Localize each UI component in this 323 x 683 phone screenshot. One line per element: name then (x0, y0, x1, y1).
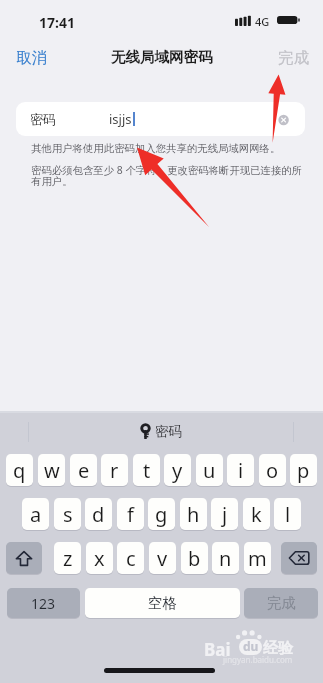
button[interactable]: e (70, 454, 97, 486)
staticText: w (44, 457, 60, 484)
staticText: f (127, 501, 134, 528)
button[interactable]: 密码 (133, 421, 190, 442)
staticText: o (266, 457, 279, 484)
button[interactable]: 空格 (85, 588, 240, 618)
staticText: i (238, 457, 244, 484)
button[interactable]: i (227, 454, 254, 486)
staticText: 17:41 (39, 13, 75, 32)
staticText: 4G (255, 14, 270, 29)
staticText: 空格 (148, 594, 177, 612)
staticText: n (219, 545, 232, 572)
staticText: 123 (31, 594, 56, 613)
button[interactable]: Backspace (281, 542, 317, 574)
button[interactable]: b (181, 542, 208, 574)
button[interactable]: 完成 (244, 588, 318, 618)
staticText: a (30, 501, 42, 528)
staticText: e (78, 457, 90, 484)
button[interactable]: k (243, 498, 270, 530)
staticText: h (187, 501, 200, 528)
button[interactable]: s (54, 498, 81, 530)
button[interactable]: n (212, 542, 239, 574)
button[interactable]: x (86, 542, 113, 574)
button[interactable]: a (22, 498, 49, 530)
staticText: u (203, 457, 216, 484)
button[interactable]: j (211, 498, 238, 530)
staticText: l (285, 501, 291, 528)
staticText: t (143, 457, 151, 484)
button[interactable]: 取消 (4, 44, 59, 72)
button[interactable]: Shift (6, 542, 42, 574)
staticText: r (110, 457, 119, 484)
staticText: m (248, 545, 267, 572)
staticText: z (63, 545, 73, 572)
staticText: b (188, 545, 201, 572)
staticText: 经验 (263, 639, 293, 658)
staticText: p (297, 457, 310, 484)
button[interactable]: z (54, 542, 81, 574)
button[interactable]: y (164, 454, 191, 486)
staticText: c (126, 545, 136, 572)
button[interactable]: p (290, 454, 317, 486)
staticText: d (92, 501, 105, 528)
staticText: 密码 (155, 423, 182, 440)
staticText: j (222, 501, 228, 528)
button[interactable]: h (180, 498, 207, 530)
staticText: Bai (204, 638, 231, 661)
button[interactable]: l (274, 498, 301, 530)
button[interactable]: r (101, 454, 128, 486)
staticText: g (155, 501, 168, 528)
staticText: 其他用户将使用此密码加入您共享的无线局域网网络。 (31, 142, 303, 155)
staticText: du (243, 639, 259, 654)
button[interactable]: g (148, 498, 175, 530)
staticText: s (63, 501, 73, 528)
staticText: k (251, 501, 262, 528)
button[interactable]: 密码 (16, 102, 305, 136)
button[interactable]: Clear text (273, 110, 293, 130)
staticText: jingyan.baidu.com (223, 654, 293, 665)
button[interactable]: w (38, 454, 65, 486)
staticText: v (157, 545, 168, 572)
button[interactable]: t (133, 454, 160, 486)
staticText: q (13, 457, 26, 484)
staticText: 密码必须包含至少 8 个字符。更改密码将断开现已连接的所有用户。 (31, 163, 303, 188)
staticText: 完成 (267, 594, 296, 612)
staticText: y (172, 457, 183, 484)
staticText: 无线局域网密码 (111, 48, 213, 66)
button[interactable]: q (6, 454, 33, 486)
button[interactable]: d (85, 498, 112, 530)
staticText: 完成 (278, 48, 309, 68)
button[interactable]: c (117, 542, 144, 574)
staticText: 取消 (16, 48, 47, 68)
button[interactable]: u (196, 454, 223, 486)
button[interactable]: f (117, 498, 144, 530)
button[interactable]: 123 (7, 588, 80, 618)
staticText: isjjs (109, 110, 132, 128)
button[interactable]: 完成 (266, 44, 321, 72)
button[interactable]: m (244, 542, 271, 574)
staticText: 密码 (30, 111, 56, 127)
staticText: x (94, 545, 105, 572)
button[interactable]: v (149, 542, 176, 574)
button[interactable]: o (259, 454, 286, 486)
